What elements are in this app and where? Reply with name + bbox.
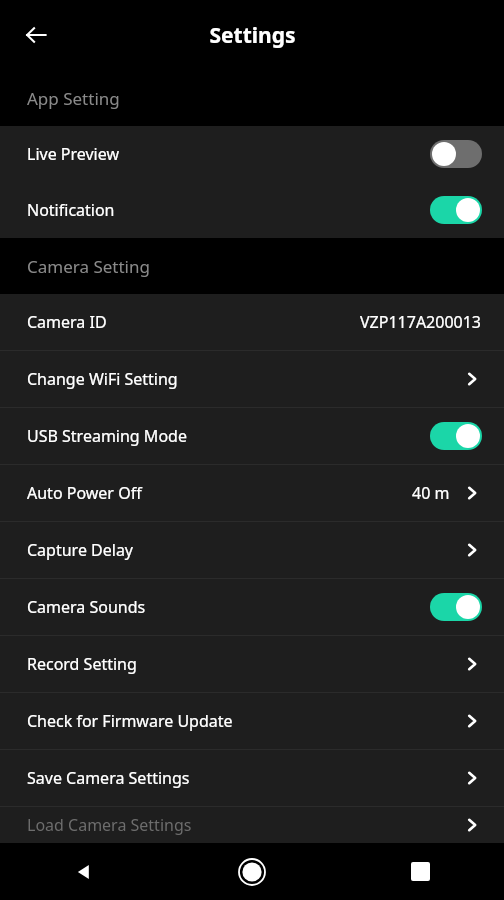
button[interactable]: Back [0,843,168,900]
staticText: Load Camera Settings [27,814,192,836]
staticText: Auto Power Off [27,482,142,504]
button[interactable]: Back [14,13,58,57]
button[interactable] [430,196,482,224]
staticText: VZP117A200013 [360,311,482,333]
button[interactable]: Check for Firmware Update [0,693,504,749]
button[interactable]: Change WiFi Setting [0,351,504,407]
staticText: Record Setting [27,653,137,675]
button[interactable] [430,422,482,450]
staticText: App Setting [27,87,120,110]
staticText: Notification [27,199,115,221]
staticText: Live Preview [27,143,120,165]
staticText: Camera ID [27,311,107,333]
button[interactable]: Camera ID [0,294,504,350]
button[interactable]: USB Streaming Mode [0,408,504,464]
button[interactable] [430,140,482,168]
staticText: Camera Sounds [27,596,146,618]
button[interactable] [430,593,482,621]
staticText: Settings [209,21,296,50]
staticText: Camera Setting [27,255,150,278]
button[interactable]: Load Camera Settings [0,807,504,843]
button[interactable]: Notification [0,182,504,238]
button[interactable]: Auto Power Off [0,465,504,521]
button[interactable]: Record Setting [0,636,504,692]
button[interactable]: Home [168,843,336,900]
staticText: Capture Delay [27,539,134,561]
button[interactable]: Camera Sounds [0,579,504,635]
staticText: Save Camera Settings [27,767,190,789]
staticText: USB Streaming Mode [27,425,187,447]
button[interactable]: Live Preview [0,126,504,182]
staticText: Check for Firmware Update [27,710,233,732]
staticText: 40 m [412,482,450,504]
button[interactable]: Recents [336,843,504,900]
button[interactable]: Save Camera Settings [0,750,504,806]
button[interactable]: Capture Delay [0,522,504,578]
staticText: Change WiFi Setting [27,368,178,390]
